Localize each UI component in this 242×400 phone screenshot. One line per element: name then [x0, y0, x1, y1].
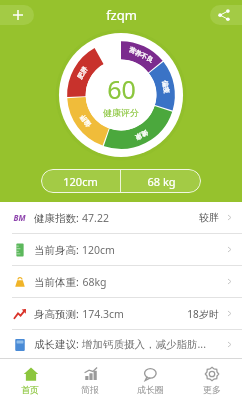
staticText: 增加钙质摄入，减少脂肪... [82, 337, 206, 351]
staticText: 当前体重: [34, 275, 79, 289]
staticText: 健康指数: [34, 211, 79, 225]
staticText: fzqm [106, 6, 137, 24]
staticText: 成长建议: [34, 337, 79, 351]
staticText: 68kg [82, 275, 107, 289]
staticText: 120cm [82, 243, 115, 257]
staticText: 更多 [203, 384, 221, 395]
button[interactable]: 身高预测: [0, 298, 242, 329]
staticText: 60 [107, 72, 136, 106]
staticText: 较胖 [199, 211, 219, 224]
staticText: 120cm [63, 174, 98, 189]
staticText: 偏胖 [78, 113, 92, 129]
button[interactable]: Share [210, 5, 242, 25]
staticText: 肥胖 [76, 65, 89, 81]
staticText: 简报 [81, 384, 99, 395]
staticText: 健康评分 [103, 107, 139, 118]
button[interactable]: 当前体重: [0, 266, 242, 297]
staticText: 成长圈 [137, 384, 164, 395]
staticText: 身高预测: [34, 307, 79, 321]
staticText: 47.22 [82, 211, 109, 225]
button[interactable]: Add [0, 5, 34, 25]
staticText: 68 kg [147, 174, 176, 189]
button[interactable]: 成长圈 [120, 359, 181, 400]
staticText: BMI [12, 212, 27, 223]
button[interactable]: 首页 [0, 359, 60, 400]
staticText: 偏瘦 [160, 80, 170, 94]
button[interactable]: 简报 [60, 359, 120, 400]
button[interactable]: 更多 [181, 359, 242, 400]
button[interactable]: 120cm [41, 169, 201, 193]
staticText: 营养不良 [128, 46, 154, 64]
staticText: 174.3cm [82, 307, 124, 321]
button[interactable]: BMI [0, 202, 242, 233]
staticText: 首页 [21, 384, 39, 395]
staticText: 18岁时 [187, 307, 219, 321]
staticText: 健康 [134, 129, 149, 141]
button[interactable]: 成长建议: [0, 330, 242, 358]
staticText: 当前身高: [34, 243, 79, 257]
button[interactable]: 当前身高: [0, 234, 242, 265]
